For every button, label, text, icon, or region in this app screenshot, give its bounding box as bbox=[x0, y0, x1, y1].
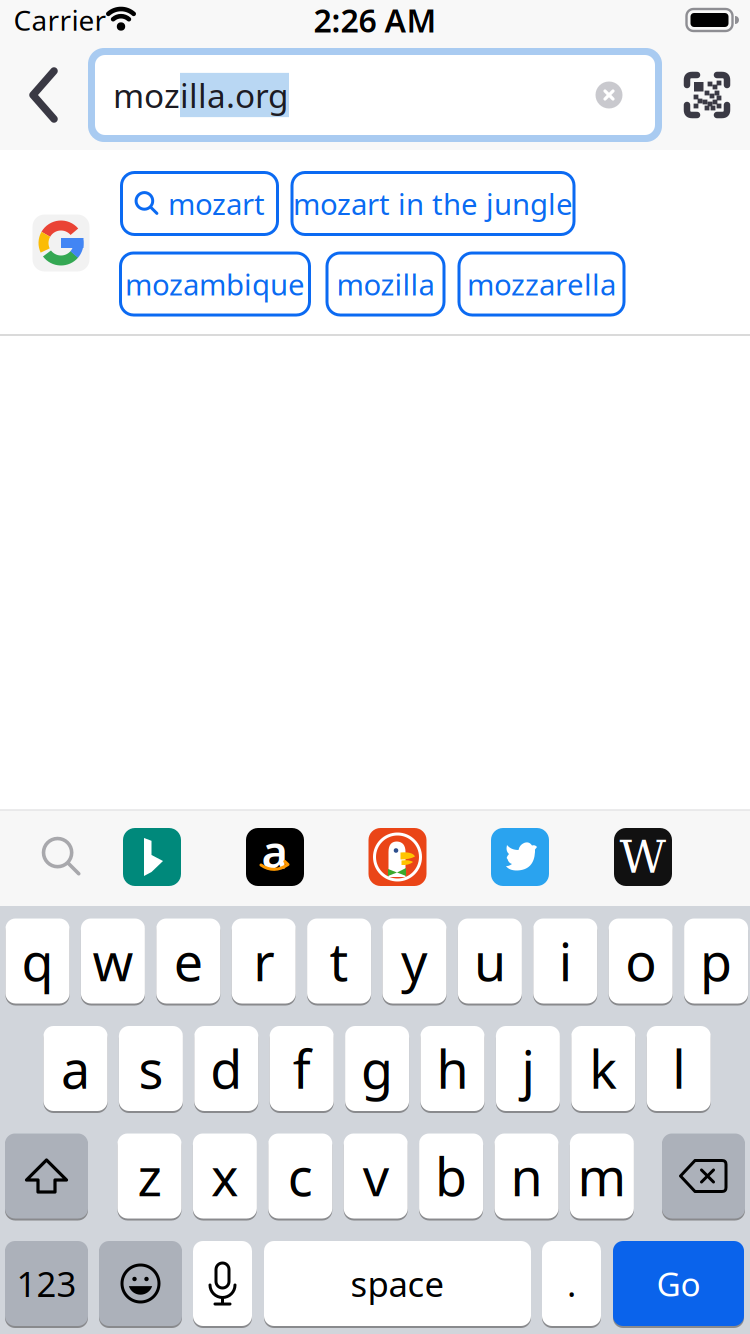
button[interactable]: DuckDuckGo bbox=[368, 828, 426, 886]
button[interactable]: Back bbox=[16, 57, 72, 133]
button[interactable]: Dictate bbox=[193, 1241, 252, 1326]
button[interactable]: n bbox=[494, 1133, 558, 1218]
button[interactable]: b bbox=[419, 1133, 483, 1218]
staticText: t bbox=[330, 926, 349, 996]
staticText: v bbox=[363, 1141, 389, 1211]
button[interactable]: t bbox=[307, 918, 371, 1003]
button[interactable]: f bbox=[270, 1026, 334, 1111]
staticText: w bbox=[92, 926, 133, 996]
button[interactable]: y bbox=[382, 918, 446, 1003]
button[interactable]: z bbox=[117, 1133, 181, 1218]
button[interactable]: x bbox=[193, 1133, 257, 1218]
button[interactable]: m bbox=[570, 1133, 634, 1218]
staticText: a bbox=[61, 1034, 90, 1103]
button[interactable]: mozart in the jungle bbox=[292, 172, 574, 234]
staticText: Go bbox=[656, 1261, 700, 1306]
button[interactable]: v bbox=[344, 1133, 408, 1218]
button[interactable]: Clear text bbox=[595, 81, 622, 108]
button[interactable]: w bbox=[81, 918, 145, 1003]
button[interactable]: Amazon bbox=[246, 828, 304, 886]
staticText: mozambique bbox=[125, 264, 305, 303]
staticText: d bbox=[210, 1034, 242, 1103]
button[interactable]: g bbox=[345, 1026, 409, 1111]
button[interactable]: j bbox=[496, 1026, 560, 1111]
staticText: q bbox=[21, 926, 53, 996]
staticText: illa.org bbox=[180, 73, 289, 117]
button[interactable]: r bbox=[232, 918, 296, 1003]
staticText: i bbox=[559, 926, 572, 996]
button[interactable]: Shift bbox=[5, 1133, 88, 1218]
staticText: p bbox=[700, 926, 732, 996]
button[interactable]: u bbox=[458, 918, 522, 1003]
staticText: e bbox=[174, 926, 203, 996]
staticText: 2:26 AM bbox=[313, 0, 436, 41]
button[interactable]: l bbox=[647, 1026, 711, 1111]
button[interactable]: h bbox=[420, 1026, 484, 1111]
button[interactable]: Search bbox=[40, 835, 84, 879]
staticText: c bbox=[288, 1141, 313, 1211]
staticText: b bbox=[435, 1141, 467, 1211]
button[interactable]: Bing bbox=[123, 828, 181, 886]
staticText: r bbox=[253, 926, 274, 996]
staticText: mozart in the jungle bbox=[293, 184, 573, 223]
staticText: l bbox=[672, 1034, 685, 1103]
button[interactable]: p bbox=[684, 918, 748, 1003]
staticText: mozzarella bbox=[467, 264, 616, 303]
button[interactable]: Wikipedia bbox=[614, 828, 672, 886]
staticText: f bbox=[293, 1034, 311, 1103]
button[interactable]: k bbox=[571, 1026, 635, 1111]
staticText: mozart bbox=[168, 184, 265, 223]
button[interactable]: mozart bbox=[121, 172, 277, 234]
staticText: 123 bbox=[16, 1260, 76, 1306]
staticText: o bbox=[625, 926, 656, 996]
staticText: y bbox=[401, 926, 428, 996]
button[interactable]: a bbox=[43, 1026, 107, 1111]
button[interactable]: Go bbox=[613, 1241, 744, 1326]
button[interactable]: d bbox=[194, 1026, 258, 1111]
button[interactable]: Delete bbox=[662, 1133, 745, 1218]
button[interactable]: 123 bbox=[5, 1241, 88, 1326]
staticText: W bbox=[619, 831, 666, 883]
staticText: u bbox=[474, 926, 506, 996]
button[interactable]: i bbox=[533, 918, 597, 1003]
staticText: j bbox=[521, 1034, 534, 1103]
staticText: k bbox=[589, 1034, 617, 1103]
staticText: g bbox=[361, 1034, 393, 1103]
staticText: . bbox=[567, 1260, 576, 1306]
staticText: a bbox=[261, 821, 288, 881]
staticText: h bbox=[436, 1034, 468, 1103]
button[interactable]: o bbox=[609, 918, 673, 1003]
button[interactable]: Scan QR code bbox=[683, 71, 731, 119]
button[interactable]: s bbox=[119, 1026, 183, 1111]
staticText: n bbox=[510, 1141, 542, 1211]
staticText: m bbox=[577, 1141, 626, 1211]
button[interactable]: mozambique bbox=[120, 253, 309, 315]
staticText: z bbox=[137, 1141, 161, 1211]
button[interactable]: mozzarella bbox=[459, 253, 624, 315]
button[interactable]: q bbox=[5, 918, 69, 1003]
button[interactable]: . bbox=[542, 1241, 601, 1326]
staticText: s bbox=[138, 1034, 163, 1103]
staticText: space bbox=[350, 1260, 444, 1306]
button[interactable]: space bbox=[264, 1241, 531, 1326]
button[interactable]: c bbox=[268, 1133, 332, 1218]
button[interactable]: Emoji bbox=[99, 1241, 182, 1326]
button[interactable]: mozilla bbox=[327, 253, 444, 315]
staticText: x bbox=[211, 1141, 239, 1211]
button[interactable]: e bbox=[156, 918, 220, 1003]
button[interactable]: Twitter bbox=[491, 828, 549, 886]
staticText: moz bbox=[113, 73, 180, 117]
staticText: Carrier bbox=[13, 1, 106, 39]
staticText: mozilla bbox=[336, 264, 434, 303]
